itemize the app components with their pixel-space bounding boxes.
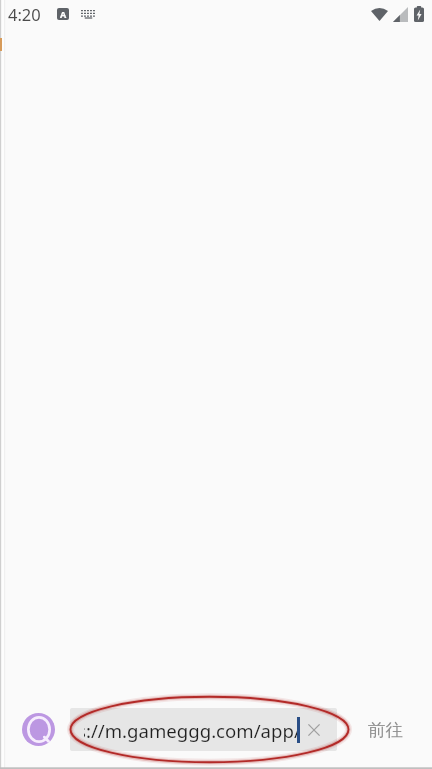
button[interactable]: 前往 [364,713,407,747]
staticText: s://m.gameggg.com/app/ [84,718,297,743]
staticText: 前往 [368,719,403,741]
button[interactable]: Browser logo [22,713,55,746]
staticText: 4:20 [8,3,41,25]
button[interactable]: Clear [302,718,326,742]
button[interactable]: s://m.gameggg.com/app/ [70,708,337,751]
staticText: A [60,8,67,20]
